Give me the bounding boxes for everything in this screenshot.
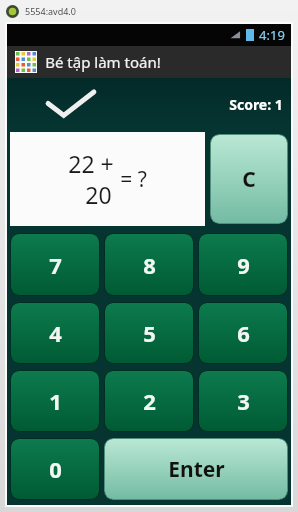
staticText: 4 — [49, 318, 62, 348]
staticText: 9 — [237, 250, 250, 280]
staticText: 7 — [49, 250, 62, 280]
button[interactable]: 1 — [11, 371, 99, 431]
staticText: 4:19 — [259, 26, 285, 44]
staticText: = ? — [120, 165, 147, 194]
staticText: Score: 1 — [229, 95, 283, 114]
staticText: Bé tập làm toán! — [45, 52, 161, 72]
button[interactable]: 6 — [199, 303, 287, 363]
staticText: 22 + — [68, 148, 114, 179]
staticText: C — [242, 165, 256, 194]
button[interactable]: 0 — [11, 439, 99, 499]
staticText: 3 — [237, 386, 250, 416]
button[interactable]: 2 — [105, 371, 193, 431]
staticText: 20 — [85, 179, 112, 210]
button[interactable]: C — [211, 135, 287, 223]
button[interactable]: Enter — [105, 439, 287, 499]
button[interactable]: 3 — [199, 371, 287, 431]
staticText: 5554:avd4.0 — [25, 5, 76, 17]
staticText: 5 — [143, 318, 156, 348]
staticText: 0 — [49, 454, 62, 484]
staticText: Enter — [168, 455, 225, 484]
button[interactable]: 4 — [11, 303, 99, 363]
button[interactable]: 5 — [105, 303, 193, 363]
staticText: 6 — [237, 318, 250, 348]
staticText: 2 — [143, 386, 156, 416]
button[interactable]: 7 — [11, 234, 99, 295]
staticText: 1 — [49, 386, 62, 416]
button[interactable]: 9 — [199, 234, 287, 295]
button[interactable]: 8 — [105, 234, 193, 295]
staticText: 8 — [143, 250, 156, 280]
